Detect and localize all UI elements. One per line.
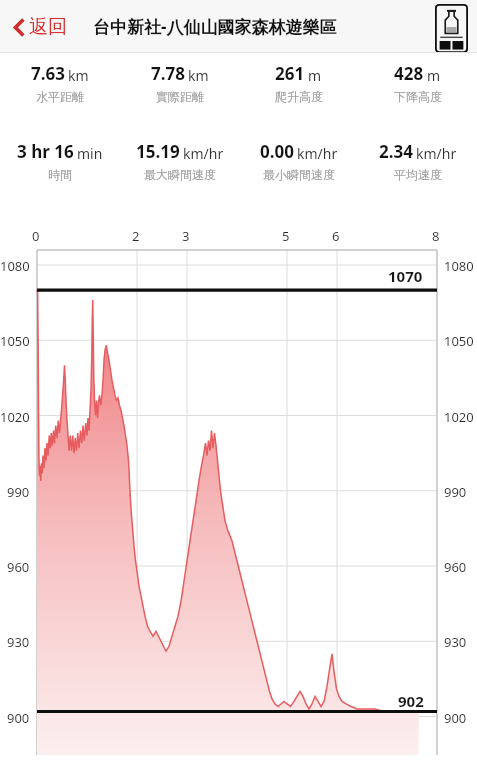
staticText: 1020: [0, 408, 30, 426]
staticText: 3 hr 16: [17, 140, 74, 163]
staticText: km: [68, 66, 89, 85]
staticText: 930: [7, 633, 30, 651]
staticText: 水平距離: [36, 89, 84, 104]
staticText: 7.63: [31, 62, 65, 85]
staticText: 2.34: [379, 140, 413, 163]
staticText: 5: [282, 227, 290, 245]
staticText: 1070: [388, 266, 423, 286]
staticText: 最大瞬間速度: [144, 167, 216, 182]
staticText: 時間: [48, 167, 72, 182]
staticText: 實際距離: [156, 89, 204, 104]
button[interactable]: 428: [358, 62, 477, 104]
staticText: 1050: [444, 332, 474, 350]
staticText: 930: [444, 633, 467, 651]
button[interactable]: 2.34: [358, 140, 477, 182]
staticText: 2: [132, 227, 140, 245]
staticText: 15.19: [136, 140, 180, 163]
staticText: km: [188, 66, 209, 85]
staticText: 6: [332, 227, 340, 245]
staticText: km/hr: [297, 144, 338, 163]
staticText: 1080: [444, 257, 474, 275]
staticText: 0.00: [260, 140, 294, 163]
staticText: 1080: [0, 257, 30, 275]
staticText: 1020: [444, 408, 474, 426]
staticText: 960: [444, 558, 467, 576]
staticText: 261: [275, 62, 305, 85]
staticText: 428: [394, 62, 424, 85]
staticText: 7.78: [151, 62, 185, 85]
button[interactable]: 0.00: [239, 140, 358, 182]
staticText: 台中新社-八仙山國家森林遊樂區: [93, 15, 337, 38]
button[interactable]: 261: [239, 62, 358, 104]
button[interactable]: 15.19: [120, 140, 239, 182]
staticText: 8: [432, 227, 440, 245]
staticText: 3: [182, 227, 190, 245]
staticText: 平均速度: [394, 167, 442, 182]
button[interactable]: 過期 out of date stamp: [435, 4, 468, 53]
staticText: m: [427, 66, 441, 85]
staticText: 返回: [29, 15, 67, 39]
staticText: m: [308, 66, 322, 85]
button[interactable]: 7.78: [120, 62, 239, 104]
staticText: 900: [444, 709, 467, 727]
staticText: 902: [398, 691, 424, 711]
staticText: 下降高度: [394, 89, 442, 104]
staticText: km/hr: [183, 144, 224, 163]
button[interactable]: 7.63: [0, 62, 120, 104]
staticText: 1050: [0, 332, 30, 350]
staticText: 爬升高度: [275, 89, 323, 104]
button[interactable]: 3 hr 16: [0, 140, 120, 182]
staticText: min: [77, 144, 103, 163]
staticText: 最小瞬間速度: [263, 167, 335, 182]
staticText: 990: [7, 483, 30, 501]
staticText: 960: [7, 558, 30, 576]
staticText: km/hr: [416, 144, 457, 163]
staticText: 990: [444, 483, 467, 501]
button[interactable]: 返回: [8, 8, 72, 46]
staticText: 0: [32, 227, 40, 245]
staticText: 900: [7, 709, 30, 727]
